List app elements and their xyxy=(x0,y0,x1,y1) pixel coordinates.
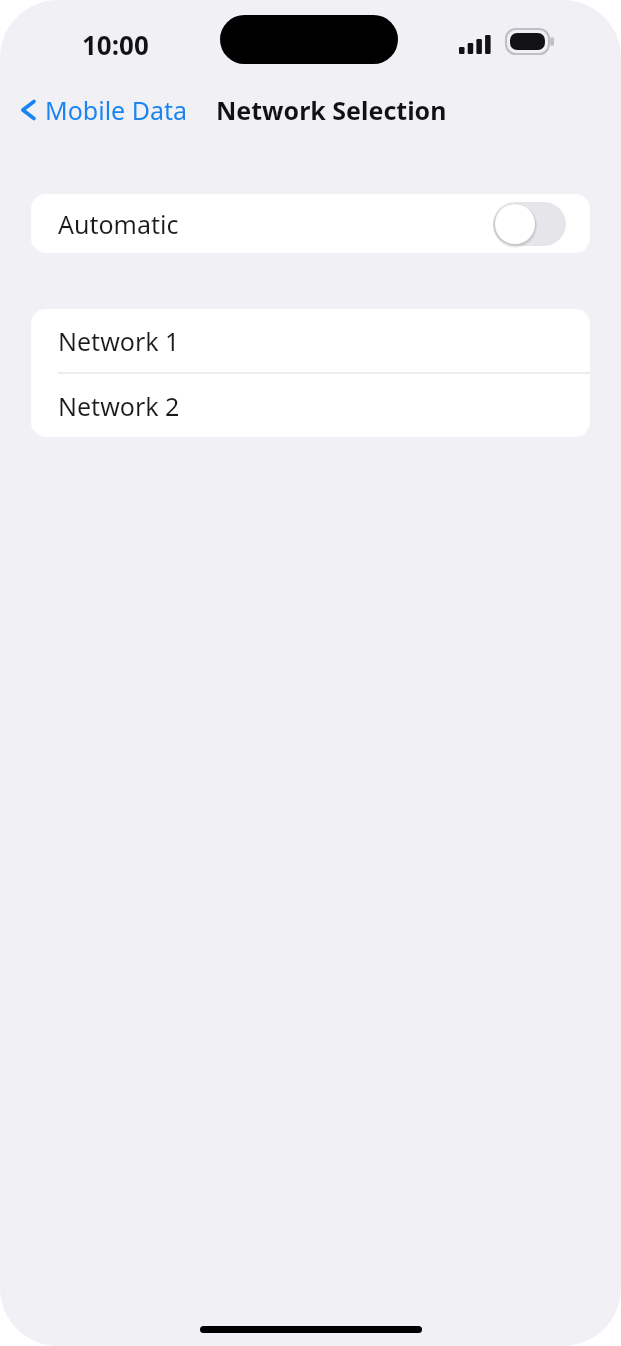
staticText: 10:00 xyxy=(82,27,149,62)
staticText: Network 2 xyxy=(58,389,180,423)
button[interactable]: Mobile Data xyxy=(14,88,192,132)
staticText: Automatic xyxy=(58,207,493,241)
button[interactable]: Network 1 xyxy=(31,309,590,372)
staticText: Mobile Data xyxy=(45,93,188,127)
button[interactable]: Automatic xyxy=(31,194,590,253)
staticText: Network 1 xyxy=(58,324,180,358)
button[interactable]: Network 2 xyxy=(31,374,590,437)
staticText: Network Selection xyxy=(216,93,447,127)
button[interactable]: Automatic toggle xyxy=(493,202,566,246)
